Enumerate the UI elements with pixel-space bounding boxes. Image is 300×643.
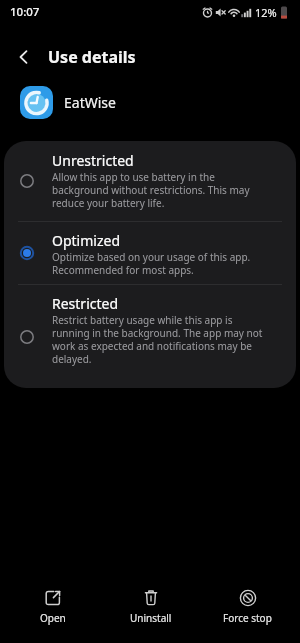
button[interactable]: Uninstall: [102, 575, 199, 643]
button[interactable]: [0, 38, 48, 76]
staticText: Force stop: [223, 611, 272, 625]
staticText: Restrict battery usage while this app is…: [52, 313, 263, 366]
staticText: Optimized: [52, 231, 120, 250]
staticText: Restricted: [52, 294, 119, 313]
staticText: 12%: [255, 5, 277, 20]
staticText: 10:07: [10, 4, 40, 20]
button[interactable]: Restricted: [4, 285, 296, 388]
staticText: Use details: [48, 46, 136, 68]
staticText: Allow this app to use battery in the bac…: [52, 170, 250, 210]
button[interactable]: Optimized: [4, 222, 296, 284]
staticText: Open: [40, 611, 66, 625]
button[interactable]: Force stop: [199, 575, 296, 643]
staticText: Uninstall: [130, 611, 172, 625]
button[interactable]: Unrestricted: [4, 141, 296, 221]
button[interactable]: Open: [4, 575, 102, 643]
staticText: EatWise: [64, 93, 116, 112]
staticText: Optimize based on your usage of this app…: [52, 250, 251, 277]
staticText: Unrestricted: [52, 151, 134, 170]
